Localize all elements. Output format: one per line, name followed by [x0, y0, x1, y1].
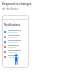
- staticText: Respond to changes: [2, 2, 32, 6]
- button[interactable]: [4, 39, 29, 44]
- button[interactable]: [4, 34, 29, 39]
- staticText: on the device: [2, 7, 19, 11]
- button[interactable]: [4, 54, 29, 59]
- button[interactable]: [4, 44, 29, 49]
- button[interactable]: [4, 29, 29, 34]
- staticText: Notifications: [4, 23, 21, 27]
- button[interactable]: [4, 49, 29, 54]
